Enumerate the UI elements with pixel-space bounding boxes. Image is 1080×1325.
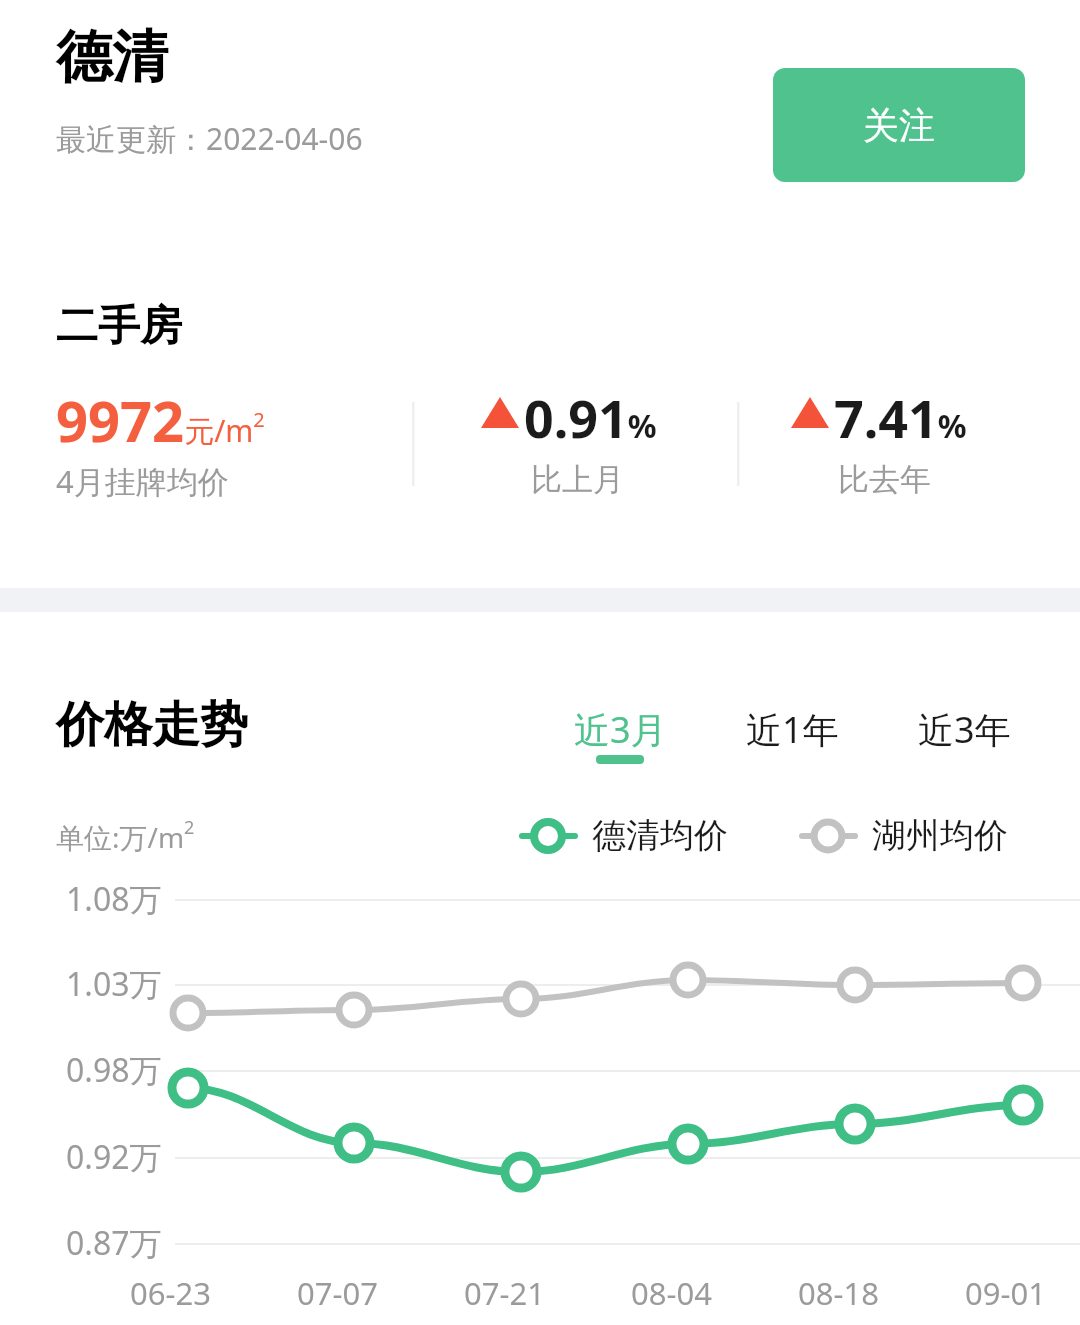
- staticText: 9972元/m2: [56, 382, 265, 458]
- staticText: 1.03万: [66, 962, 162, 1006]
- staticText: 近3年: [918, 705, 1011, 754]
- staticText: 08-18: [798, 1272, 879, 1314]
- staticText: 4月挂牌均价: [56, 460, 229, 502]
- staticText: 06-23: [130, 1272, 211, 1314]
- staticText: 07-21: [464, 1272, 545, 1314]
- button[interactable]: 关注: [773, 68, 1025, 182]
- staticText: 湖州均价: [872, 814, 1008, 857]
- staticText: 7.41%: [834, 382, 967, 453]
- staticText: 二手房: [56, 300, 182, 353]
- button[interactable]: 近3月: [560, 700, 680, 758]
- staticText: 比去年: [838, 460, 931, 499]
- staticText: 07-07: [297, 1272, 378, 1314]
- staticText: 09-01: [965, 1272, 1046, 1314]
- staticText: 0.87万: [66, 1221, 162, 1265]
- staticText: 近3月: [574, 705, 667, 754]
- staticText: 近1年: [746, 705, 839, 754]
- staticText: 0.91%: [524, 382, 657, 453]
- staticText: 08-04: [631, 1272, 712, 1314]
- button[interactable]: 德清均价 series: [500, 806, 750, 866]
- staticText: 价格走势: [56, 695, 248, 755]
- button[interactable]: 湖州均价 series: [780, 806, 1030, 866]
- button[interactable]: 近3年: [904, 700, 1024, 758]
- staticText: 0.92万: [66, 1135, 162, 1179]
- staticText: 0.98万: [66, 1048, 162, 1092]
- staticText: 单位:万/m2: [56, 815, 195, 856]
- staticText: 德清均价: [592, 814, 728, 857]
- button[interactable]: 近1年: [732, 700, 852, 758]
- staticText: 比上月: [531, 460, 624, 499]
- staticText: 关注: [863, 103, 935, 148]
- staticText: 最近更新：2022-04-06: [56, 118, 363, 159]
- staticText: 德清: [56, 22, 168, 93]
- staticText: 1.08万: [66, 877, 162, 921]
